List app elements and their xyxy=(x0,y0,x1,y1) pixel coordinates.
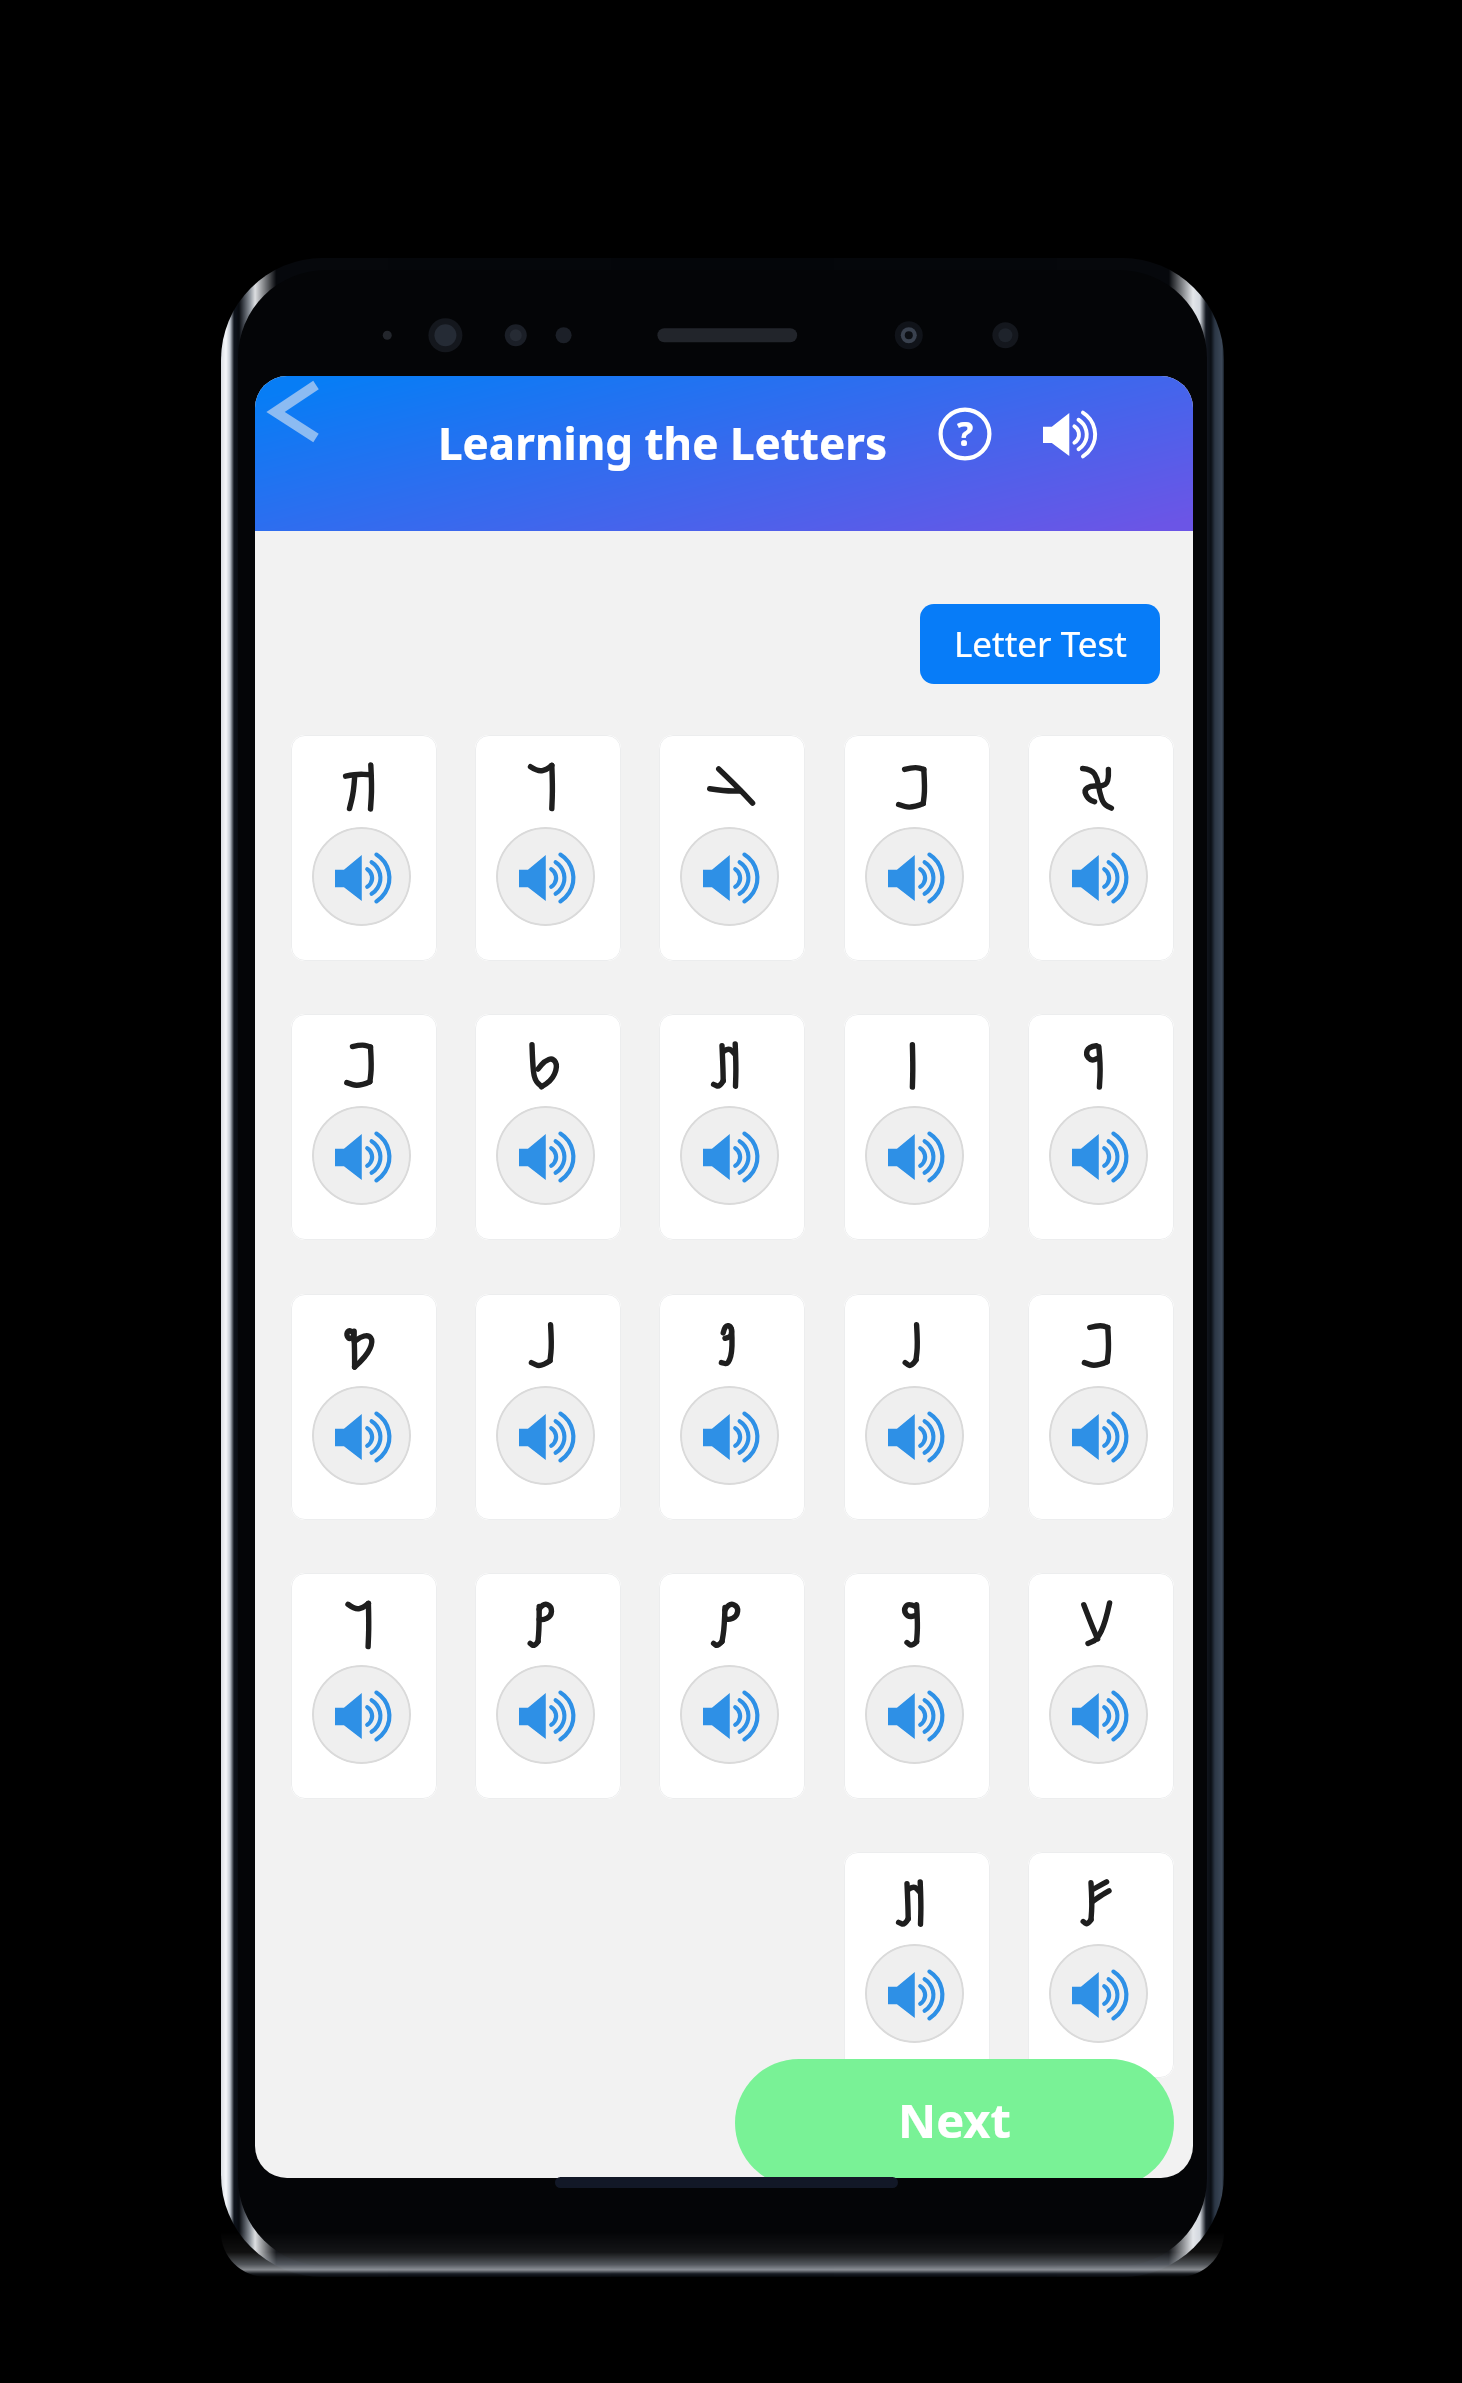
button[interactable]: Play letter sound xyxy=(844,1852,990,2078)
button[interactable]: Play letter sound xyxy=(844,1573,990,1799)
button[interactable]: Play letter sound xyxy=(475,1294,621,1520)
button[interactable]: Play letter sound xyxy=(659,735,805,961)
button[interactable]: Play letter sound xyxy=(1049,1386,1148,1485)
button[interactable]: Play letter sound xyxy=(1028,1294,1174,1520)
button[interactable]: Play letter sound xyxy=(312,1665,411,1764)
button[interactable]: Play letter sound xyxy=(496,1665,595,1764)
button[interactable]: Play letter sound xyxy=(865,1944,964,2043)
button[interactable]: Play letter sound xyxy=(475,1573,621,1799)
button[interactable]: Play letter sound xyxy=(312,827,411,926)
button[interactable]: Play letter sound xyxy=(865,1106,964,1205)
button[interactable]: Play letter sound xyxy=(680,1665,779,1764)
button[interactable]: Play letter sound xyxy=(1049,1944,1148,2043)
button[interactable]: Play letter sound xyxy=(844,1294,990,1520)
button[interactable]: Back xyxy=(255,376,333,454)
button[interactable]: Play letter sound xyxy=(291,1573,437,1799)
button[interactable]: Play letter sound xyxy=(1049,1665,1148,1764)
button[interactable]: Play letter sound xyxy=(475,735,621,961)
button[interactable]: Play letter sound xyxy=(1028,1573,1174,1799)
staticText: Letter Test xyxy=(954,620,1127,668)
button[interactable]: Play letter sound xyxy=(496,1386,595,1485)
staticText: Next xyxy=(898,2088,1011,2152)
staticText: Learning the Letters xyxy=(438,413,887,473)
button[interactable]: Play letter sound xyxy=(659,1294,805,1520)
button[interactable]: Play letter sound xyxy=(680,1386,779,1485)
button[interactable]: Play letter sound xyxy=(312,1386,411,1485)
button[interactable]: Play letter sound xyxy=(291,1294,437,1520)
button[interactable]: Play letter sound xyxy=(1028,735,1174,961)
button[interactable]: Next xyxy=(735,2059,1174,2178)
button[interactable]: Play letter sound xyxy=(1049,1106,1148,1205)
staticText: ? xyxy=(957,410,974,456)
button[interactable]: Play letter sound xyxy=(291,735,437,961)
button[interactable]: Play letter sound xyxy=(496,1106,595,1205)
button[interactable]: Play letter sound xyxy=(1028,1852,1174,2078)
button[interactable]: Play letter sound xyxy=(659,1014,805,1240)
button[interactable]: Play letter sound xyxy=(1049,827,1148,926)
button[interactable]: Letter Test xyxy=(920,604,1160,684)
button[interactable]: Help xyxy=(931,400,999,468)
button[interactable]: Play letter sound xyxy=(659,1573,805,1799)
button[interactable]: Play letter sound xyxy=(844,1014,990,1240)
button[interactable]: Play letter sound xyxy=(680,827,779,926)
button[interactable]: Play letter sound xyxy=(680,1106,779,1205)
button[interactable]: Play letter sound xyxy=(475,1014,621,1240)
button[interactable]: Sound xyxy=(1043,413,1098,456)
button[interactable]: Play letter sound xyxy=(844,735,990,961)
button[interactable]: Play letter sound xyxy=(291,1014,437,1240)
button[interactable]: Play letter sound xyxy=(1028,1014,1174,1240)
button[interactable]: Play letter sound xyxy=(865,827,964,926)
button[interactable]: Play letter sound xyxy=(865,1386,964,1485)
button[interactable]: Play letter sound xyxy=(312,1106,411,1205)
button[interactable]: Play letter sound xyxy=(496,827,595,926)
button[interactable]: Play letter sound xyxy=(865,1665,964,1764)
